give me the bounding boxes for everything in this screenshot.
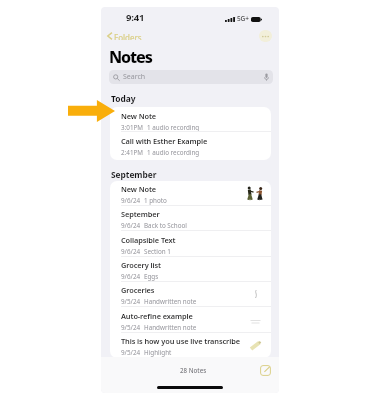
staticText: 1 photo bbox=[144, 196, 167, 205]
button[interactable]: September bbox=[110, 206, 271, 231]
button[interactable]: Search bbox=[109, 70, 273, 84]
staticText: 9/6/24 bbox=[121, 272, 141, 281]
staticText: 9/5/24 bbox=[121, 297, 141, 306]
button[interactable]: Collapsible Text bbox=[110, 232, 271, 257]
staticText: Today bbox=[111, 93, 136, 104]
staticText: Handwritten note bbox=[144, 323, 197, 332]
staticText: This is how you use live transcribe bbox=[121, 336, 240, 346]
staticText: New Note bbox=[121, 184, 157, 194]
staticText: Search bbox=[123, 72, 146, 82]
staticText: Folders bbox=[114, 32, 142, 40]
staticText: 2:41PM bbox=[121, 148, 144, 157]
staticText: 9/6/24 bbox=[121, 196, 141, 205]
button[interactable]: Grocery list bbox=[110, 257, 271, 282]
staticText: 28 Notes bbox=[180, 366, 207, 374]
staticText: Groceries bbox=[121, 285, 155, 295]
button[interactable]: This is how you use live transcribe bbox=[110, 333, 271, 358]
button[interactable]: Call with Esther Example bbox=[110, 132, 271, 157]
button[interactable]: New Note bbox=[110, 181, 271, 206]
staticText: 9/6/24 bbox=[121, 221, 141, 230]
staticText: 9:41 bbox=[126, 11, 145, 24]
staticText: 9/5/24 bbox=[121, 323, 141, 332]
staticText: 3:01PM bbox=[121, 123, 144, 132]
button[interactable]: Auto-refine example bbox=[110, 308, 271, 333]
staticText: 5G+ bbox=[237, 14, 249, 23]
staticText: Eggs bbox=[144, 272, 159, 281]
staticText: 1 audio recording bbox=[147, 148, 200, 157]
button[interactable]: Compose new note bbox=[257, 362, 274, 379]
button[interactable]: Folders bbox=[105, 30, 144, 42]
staticText: Call with Esther Example bbox=[121, 136, 208, 146]
staticText: September bbox=[111, 169, 157, 180]
staticText: September bbox=[121, 209, 160, 219]
button[interactable]: New Note bbox=[110, 107, 271, 132]
staticText: 9/5/24 bbox=[121, 348, 141, 357]
staticText: Back to School bbox=[144, 221, 187, 230]
staticText: New Note bbox=[121, 111, 157, 121]
button[interactable]: Groceries bbox=[110, 282, 271, 307]
button[interactable]: 28 Notes bbox=[180, 366, 207, 374]
staticText: Collapsible Text bbox=[121, 235, 176, 245]
staticText: Handwritten note bbox=[144, 297, 197, 306]
staticText: Auto-refine example bbox=[121, 311, 193, 321]
staticText: 9/6/24 bbox=[121, 247, 141, 256]
staticText: Highlight bbox=[144, 348, 172, 357]
button[interactable]: More options bbox=[259, 30, 272, 42]
staticText: 1 audio recording bbox=[147, 123, 200, 132]
staticText: Grocery list bbox=[121, 260, 161, 270]
staticText: Notes bbox=[109, 46, 152, 68]
staticText: Section 1 bbox=[144, 247, 171, 256]
